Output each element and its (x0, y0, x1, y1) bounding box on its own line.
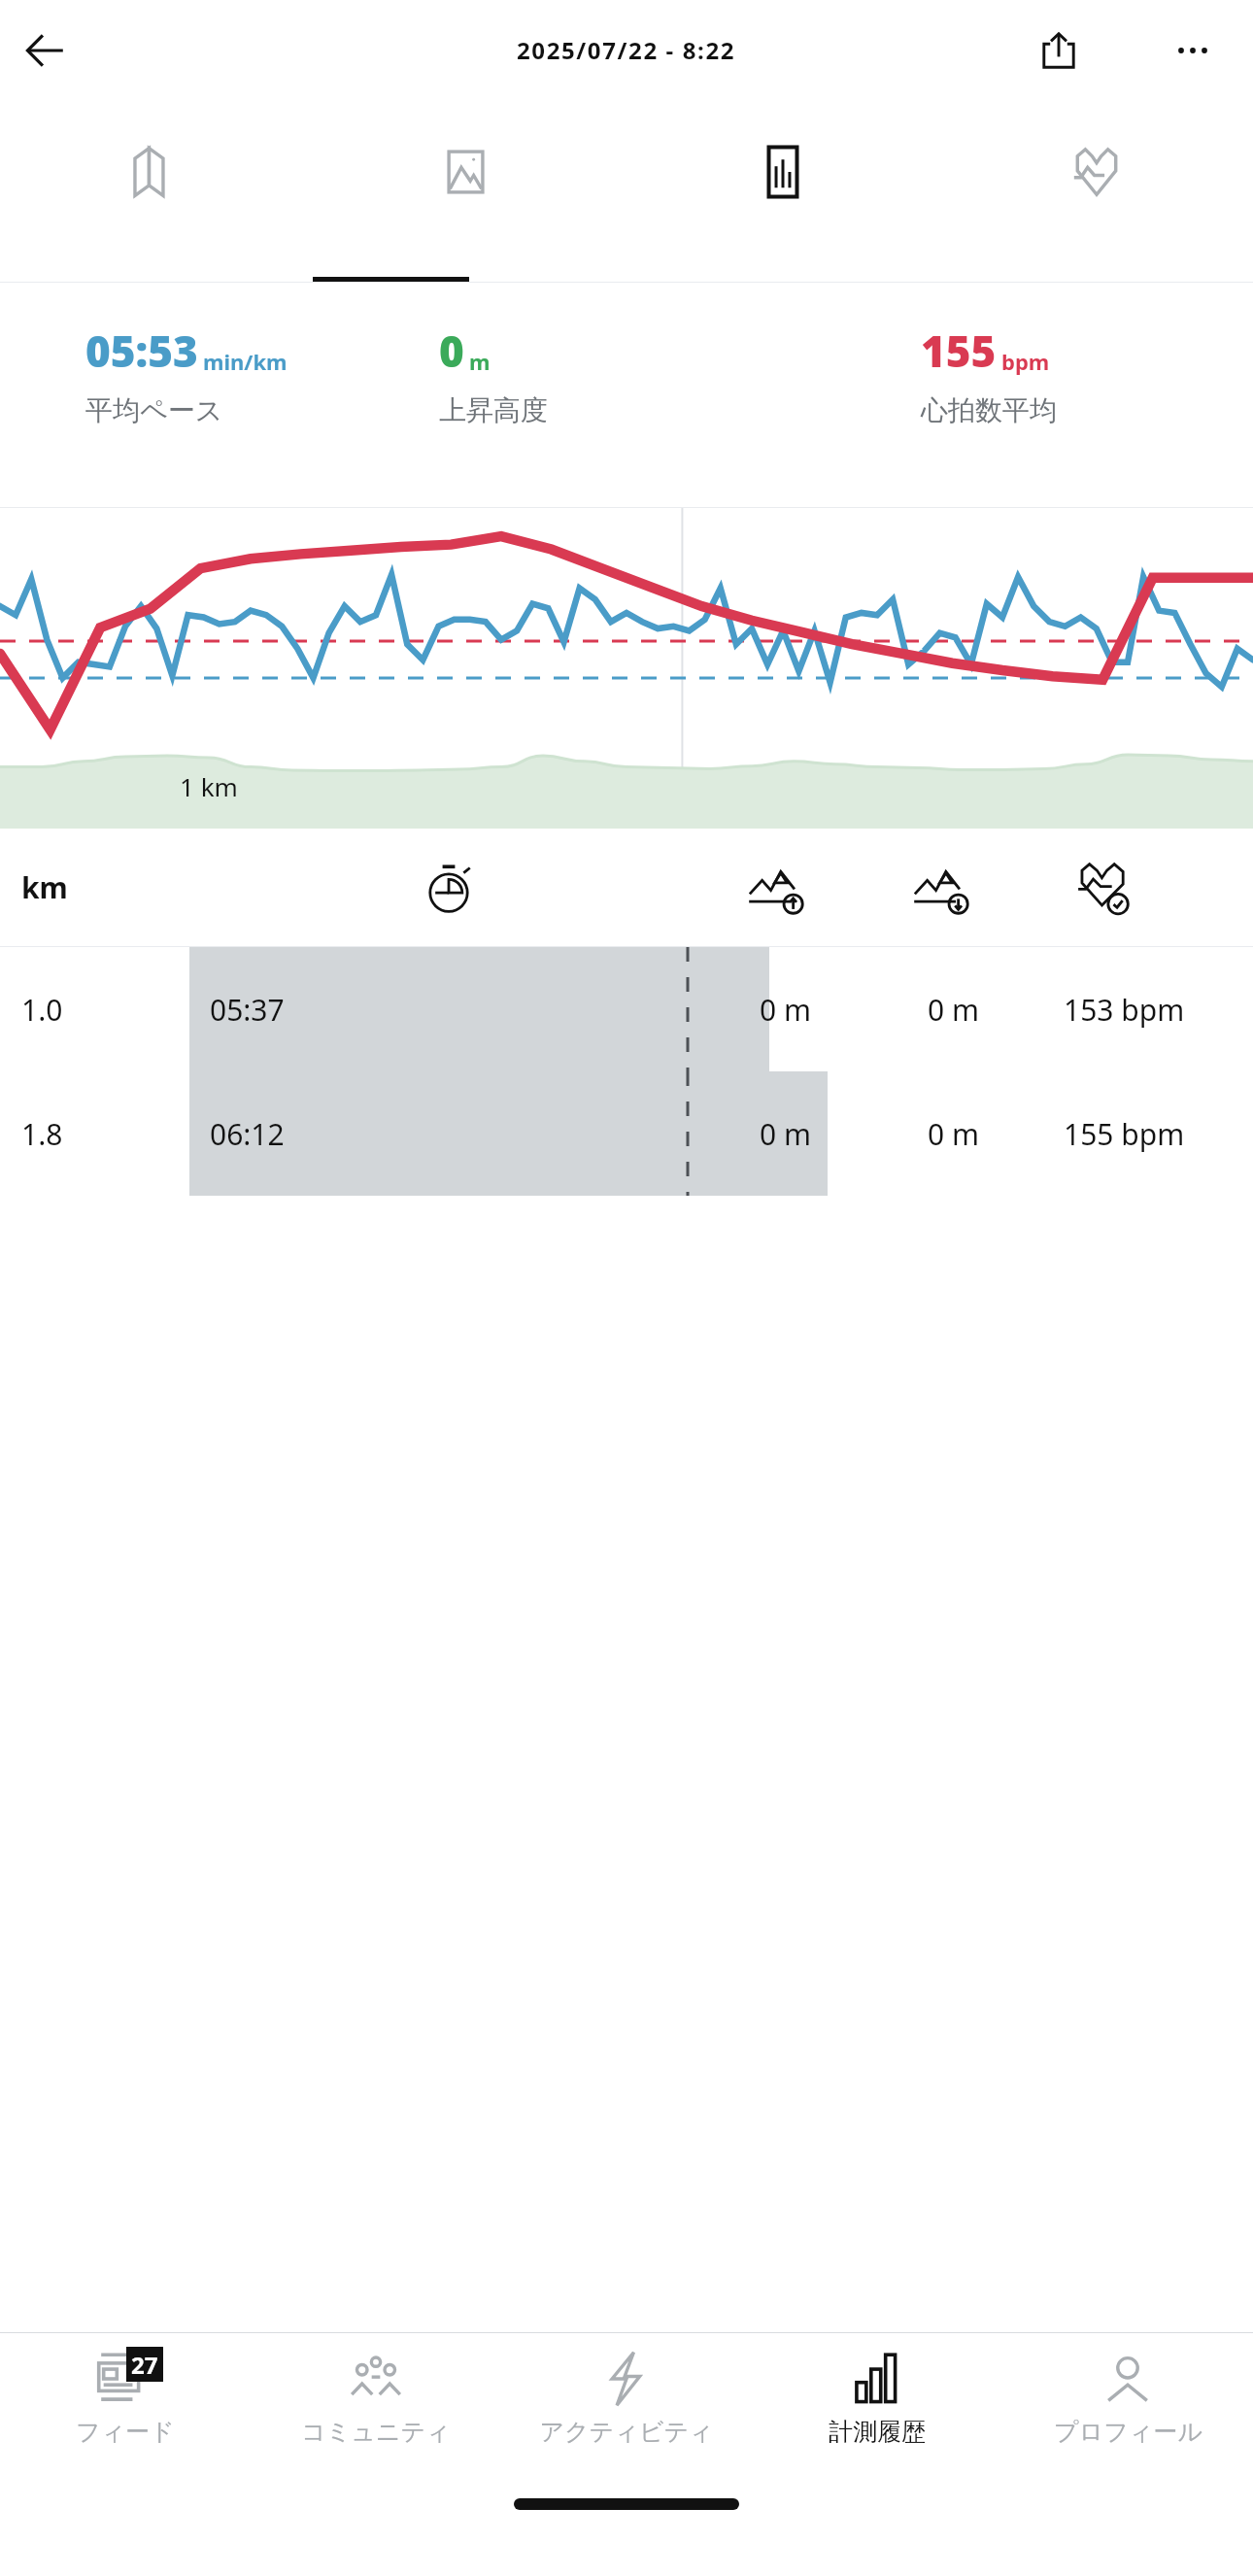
button[interactable]: プロフィール (1002, 2333, 1253, 2481)
button[interactable]: Map (0, 100, 313, 282)
staticText: 0 m (928, 990, 980, 1030)
button[interactable]: アクティビティ (501, 2333, 752, 2481)
staticText: 0 (439, 322, 464, 380)
staticText: 平均ペース (85, 393, 223, 427)
staticText: 1 km (180, 769, 238, 803)
button[interactable]: Charts (626, 100, 939, 282)
staticText: 0 m (928, 1114, 980, 1154)
staticText: 2025/07/22 - 8:22 (517, 34, 736, 66)
staticText: コミュニティ (301, 2417, 451, 2447)
staticText: 0 m (760, 1114, 812, 1154)
staticText: 155 (921, 322, 997, 380)
staticText: プロフィール (1054, 2417, 1202, 2447)
staticText: 1.0 (21, 990, 63, 1030)
staticText: 上昇高度 (439, 393, 548, 427)
staticText: 06:12 (210, 1114, 285, 1154)
button[interactable]: Photos (313, 100, 626, 282)
button[interactable]: 1.0 (0, 947, 1253, 1071)
staticText: 05:37 (210, 990, 285, 1030)
staticText: 計測履歴 (829, 2417, 926, 2447)
staticText: 27 (131, 2349, 158, 2381)
button[interactable]: コミュニティ (251, 2333, 501, 2481)
staticText: フィード (76, 2417, 175, 2447)
staticText: 153 bpm (1064, 990, 1185, 1030)
button[interactable]: 27 (0, 2333, 251, 2481)
staticText: m (469, 347, 491, 376)
staticText: アクティビティ (539, 2417, 714, 2447)
staticText: 155 bpm (1064, 1114, 1185, 1154)
staticText: bpm (1001, 347, 1050, 376)
staticText: min/km (203, 347, 288, 376)
button[interactable]: Back (10, 16, 80, 85)
button[interactable]: 1.8 (0, 1071, 1253, 1196)
button[interactable]: Share (1024, 16, 1094, 85)
staticText: 1.8 (21, 1114, 63, 1154)
button[interactable]: 計測履歴 (752, 2333, 1002, 2481)
button[interactable]: More options (1158, 16, 1228, 85)
button[interactable]: Heart rate (939, 100, 1253, 282)
staticText: km (21, 867, 68, 907)
staticText: 0 m (760, 990, 812, 1030)
staticText: 05:53 (85, 322, 198, 380)
staticText: 心拍数平均 (921, 393, 1057, 427)
